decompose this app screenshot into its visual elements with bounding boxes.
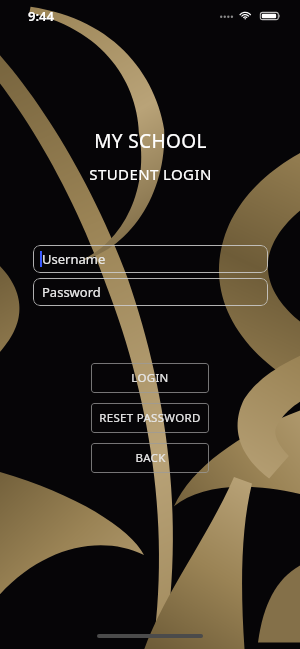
staticText: STUDENT LOGIN: [89, 164, 212, 184]
button[interactable]: RESET PASSWORD: [91, 403, 209, 433]
staticText: LOGIN: [131, 370, 169, 386]
staticText: Password: [42, 283, 101, 301]
staticText: BACK: [135, 450, 166, 466]
button[interactable]: Password: [33, 278, 268, 306]
staticText: MY SCHOOL: [94, 128, 207, 154]
staticText: 9:44: [28, 7, 54, 25]
button[interactable]: Username: [33, 245, 268, 273]
button[interactable]: BACK: [91, 443, 209, 473]
button[interactable]: LOGIN: [91, 363, 209, 393]
staticText: Username: [42, 250, 106, 268]
staticText: RESET PASSWORD: [99, 410, 201, 426]
other: Status icons: [220, 9, 280, 23]
